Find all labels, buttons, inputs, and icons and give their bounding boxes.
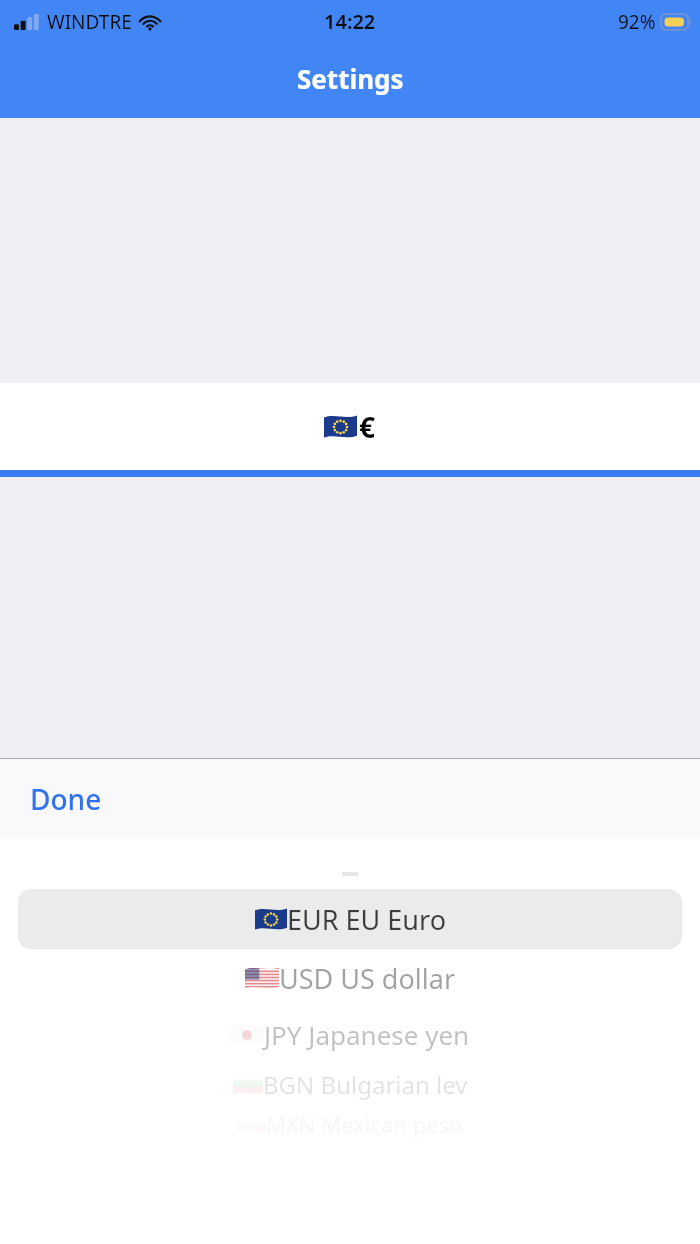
staticText: Settings [297,61,404,96]
staticText: EUR EU Euro [287,901,446,938]
staticText: € [359,408,376,446]
button[interactable]: BGN Bulgarian lev [0,1061,700,1107]
button[interactable]: Done [0,770,120,828]
staticText: 92% [618,9,656,35]
button[interactable]: € [0,383,700,470]
staticText: Done [30,780,102,818]
button[interactable]: EUR EU Euro [18,889,682,949]
button[interactable]: JPY Japanese yen [0,1007,700,1061]
staticText: BGN Bulgarian lev [263,1068,468,1101]
staticText: USD US dollar [279,960,456,997]
staticText: WINDTRE [47,9,132,35]
button[interactable]: USD US dollar [0,949,700,1007]
staticText: JPY Japanese yen [264,1017,470,1052]
staticText: 14:22 [324,8,376,35]
